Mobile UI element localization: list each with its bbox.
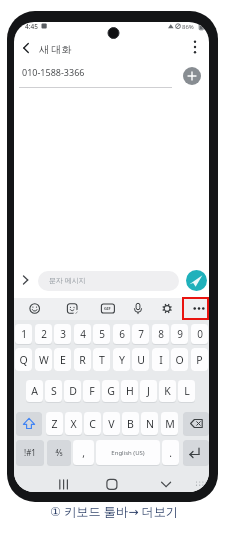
button[interactable] [102,474,122,492]
button[interactable]: F [83,380,100,402]
button[interactable] [183,67,201,85]
staticText: Y [119,353,125,367]
button[interactable]: 8 [152,324,169,344]
button[interactable]: K [159,380,176,402]
button[interactable]: Z [46,412,63,435]
staticText: 3 [60,327,66,341]
button[interactable]: 문자 메시지 [38,271,179,291]
button[interactable]: 2 [35,324,52,344]
button[interactable] [16,38,36,58]
staticText: I [159,353,163,367]
staticText: U [137,353,145,367]
staticText: 문자 메시지 [49,276,86,286]
staticText: 6 [119,327,125,341]
button[interactable] [183,412,209,435]
staticText: N [146,417,154,431]
button[interactable]: 5 [93,324,110,344]
button[interactable] [156,474,176,492]
button[interactable] [26,299,44,317]
button[interactable]: , [73,440,94,465]
button[interactable]: H [121,380,138,402]
button[interactable]: G [102,380,119,402]
staticText: B [127,417,134,431]
button[interactable] [190,299,208,317]
staticText: Q [19,353,28,367]
staticText: E [60,353,66,367]
staticText: 4 [80,327,86,341]
staticText: K [164,384,171,398]
button[interactable]: S [45,380,62,402]
button[interactable] [183,440,209,465]
button[interactable]: O [171,348,188,371]
staticText: 86% [182,23,194,31]
button[interactable]: C [84,412,101,435]
button[interactable]: E [54,348,71,371]
staticText: 0 [197,327,203,341]
button[interactable] [186,270,207,291]
button[interactable]: ⅘ [47,440,71,465]
button[interactable] [63,299,81,317]
staticText: D [69,384,77,398]
button[interactable]: N [141,412,158,435]
button[interactable]: 3 [54,324,71,344]
button[interactable]: P [191,348,208,371]
button[interactable]: A [26,380,43,402]
button[interactable]: B [122,412,139,435]
button[interactable]: Y [113,348,130,371]
button[interactable] [158,299,176,317]
staticText: 2 [41,327,47,341]
staticText: G [107,384,115,398]
button[interactable]: I [152,348,169,371]
staticText: 7 [138,327,144,341]
staticText: English (US) [111,449,145,457]
button[interactable]: . [162,440,179,465]
button[interactable]: X [65,412,82,435]
staticText: , [82,446,85,460]
staticText: V [108,417,115,431]
button[interactable]: U [132,348,149,371]
staticText: ① 키보드 툴바→ 더보기 [50,503,179,520]
staticText: . [169,446,172,460]
button[interactable] [186,38,204,58]
staticText: 8 [158,327,164,341]
staticText: A [31,384,38,398]
staticText: F [89,384,95,398]
staticText: X [70,417,77,431]
button[interactable]: 1 [15,324,32,344]
staticText: !#1 [24,447,36,458]
staticText: Z [51,417,58,431]
button[interactable]: 7 [132,324,149,344]
staticText: S [51,384,57,398]
button[interactable] [16,412,42,435]
staticText: 1 [21,327,27,341]
button[interactable]: 0 [191,324,208,344]
button[interactable]: 6 [113,324,130,344]
button[interactable]: J [140,380,157,402]
button[interactable] [129,299,147,317]
button[interactable] [99,299,117,317]
staticText: ⅘ [55,447,63,459]
button[interactable]: D [64,380,81,402]
button[interactable]: !#1 [16,440,44,465]
button[interactable]: 4 [74,324,91,344]
staticText: W [39,353,49,367]
button[interactable]: Q [15,348,32,371]
button[interactable]: English (US) [96,440,160,465]
staticText: L [184,384,190,398]
button[interactable]: W [35,348,52,371]
button[interactable]: L [178,380,195,402]
staticText: 4:45 [25,22,38,31]
button[interactable]: R [74,348,91,371]
staticText: 010-1588-3366 [22,66,85,78]
button[interactable]: T [93,348,110,371]
button[interactable]: 9 [171,324,188,344]
staticText: O [175,353,184,367]
button[interactable]: M [161,412,178,435]
button[interactable] [54,474,74,492]
staticText: 9 [177,327,183,341]
staticText: 5 [99,327,105,341]
button[interactable]: V [103,412,120,435]
staticText: P [196,353,203,367]
staticText: T [99,353,105,367]
staticText: H [126,384,134,398]
